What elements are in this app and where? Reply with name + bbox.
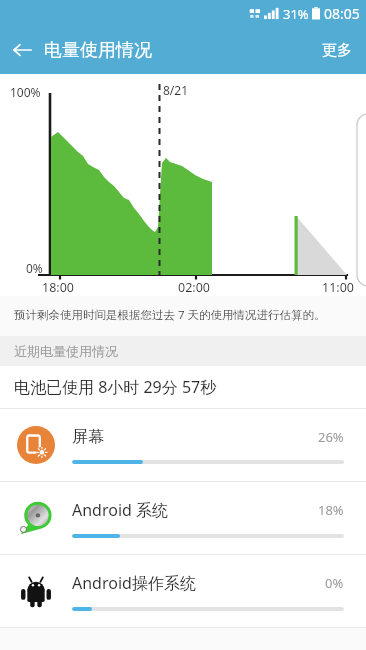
staticText: Android 系统 [72, 499, 312, 521]
staticText: 更多 [322, 41, 352, 60]
staticText: 31% [283, 5, 309, 23]
staticText: 11:00 [322, 279, 354, 296]
staticText: 26% [318, 428, 344, 446]
staticText: 100% [10, 84, 41, 100]
staticText: 8/21 [163, 82, 189, 98]
staticText: 0% [26, 260, 43, 276]
staticText: 屏幕 [72, 427, 312, 447]
staticText: Android操作系统 [72, 572, 319, 594]
button[interactable]: 屏幕 [0, 409, 366, 481]
staticText: 0% [325, 574, 344, 592]
button[interactable]: Android操作系统 [0, 555, 366, 627]
staticText: 08:05 [324, 4, 360, 23]
staticText: 18:00 [42, 279, 74, 296]
button[interactable]: 电池已使用 8小时 29分 57秒 [0, 366, 366, 408]
button[interactable]: Android 系统 [0, 482, 366, 554]
staticText: 18% [318, 501, 344, 519]
staticText: 预计剩余使用时间是根据您过去 7 天的使用情况进行估算的。 [14, 307, 326, 323]
staticText: 电量使用情况 [44, 39, 152, 62]
staticText: 02:00 [178, 279, 210, 296]
button[interactable]: 更多 [308, 28, 366, 73]
button[interactable]: Back [0, 28, 44, 72]
staticText: 近期电量使用情况 [14, 343, 118, 359]
staticText: 电池已使用 8小时 29分 57秒 [14, 376, 217, 398]
